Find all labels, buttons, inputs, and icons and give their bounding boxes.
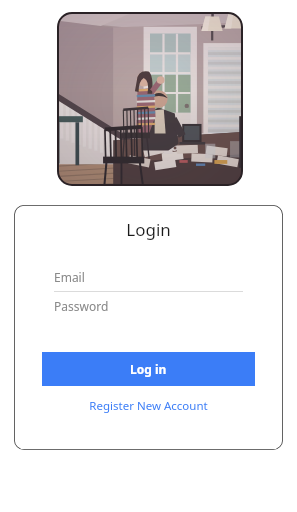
button[interactable]: Email	[54, 263, 243, 291]
button[interactable]: Log in	[42, 352, 255, 386]
staticText: Password	[54, 298, 109, 314]
staticText: Email	[54, 269, 85, 285]
staticText: Log in	[130, 361, 167, 377]
button[interactable]: Register New Account	[14, 395, 283, 417]
button[interactable]: Password	[54, 292, 243, 320]
staticText: Login	[14, 218, 283, 241]
staticText: Register New Account	[89, 398, 208, 414]
